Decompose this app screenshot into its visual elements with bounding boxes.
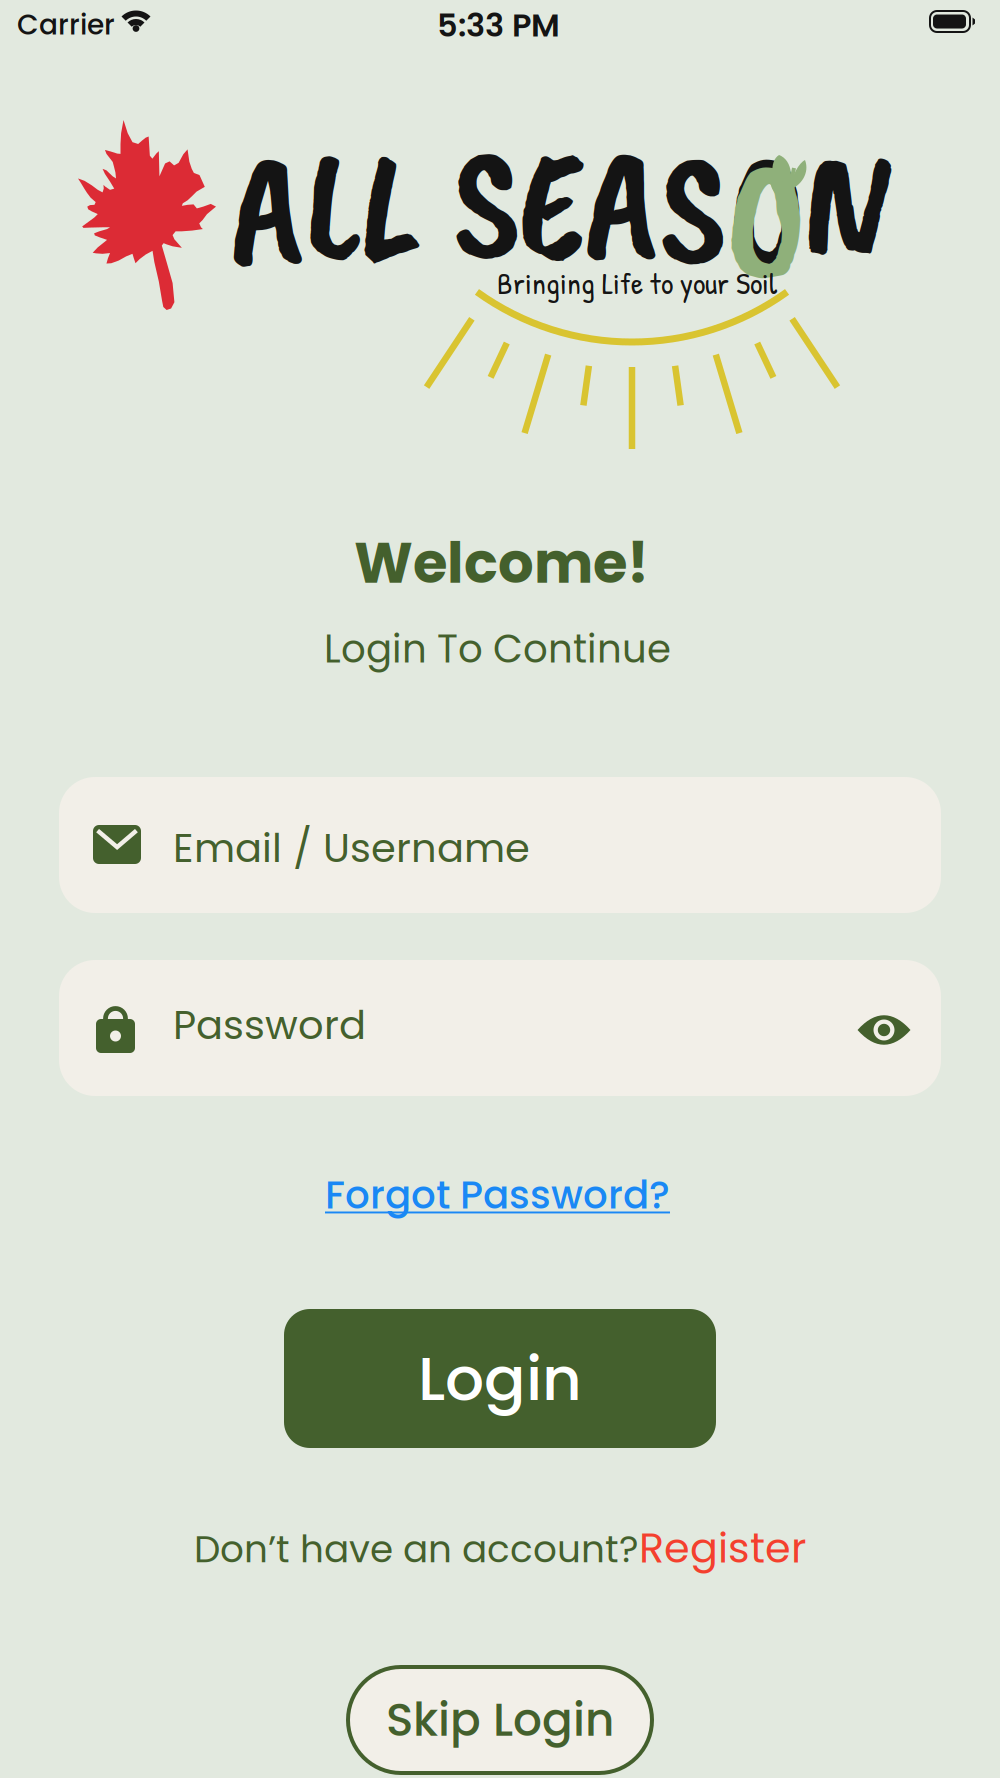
button[interactable]: Register xyxy=(0,0,806,1577)
button[interactable]: Login xyxy=(0,0,716,1448)
staticText: Email / Username xyxy=(173,820,530,876)
staticText: Skip Login xyxy=(386,1688,614,1752)
staticText: Login To Continue xyxy=(324,622,671,676)
staticText: Forgot Password? xyxy=(325,1168,670,1222)
button[interactable]: Show password xyxy=(59,960,926,1072)
staticText: 5:33 PM xyxy=(437,3,560,48)
staticText: Login xyxy=(418,1336,582,1421)
button[interactable]: Forgot Password? xyxy=(0,0,670,1222)
staticText: Don’t have an account? xyxy=(194,1523,639,1575)
staticText: Bringing Life to your Soil xyxy=(497,262,777,303)
button[interactable]: Skip Login xyxy=(0,0,652,1773)
staticText: Password xyxy=(173,997,366,1053)
staticText: Register xyxy=(639,1519,806,1577)
staticText: Carrier xyxy=(17,5,115,44)
staticText: O xyxy=(726,112,807,320)
staticText: Welcome! xyxy=(354,524,649,602)
staticText: ALL SEASON xyxy=(230,106,890,306)
